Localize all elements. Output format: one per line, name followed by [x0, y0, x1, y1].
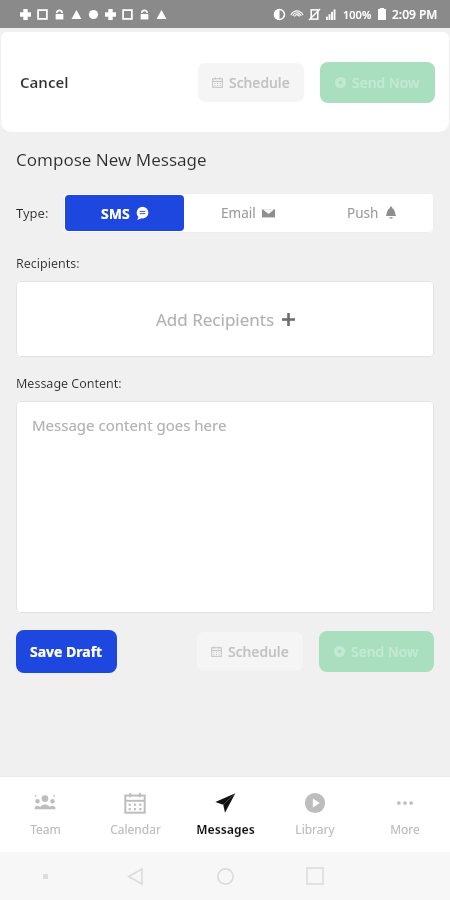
staticText: Save Draft	[30, 642, 103, 661]
button[interactable]: More	[360, 776, 450, 852]
button[interactable]: Save Draft	[16, 630, 117, 673]
staticText: 100%	[343, 7, 372, 22]
staticText: Type:	[16, 204, 49, 222]
staticText: Message content goes here	[32, 415, 227, 435]
staticText: Team	[30, 821, 61, 837]
staticText: SMS	[101, 204, 130, 223]
button[interactable]: Push	[310, 193, 434, 233]
staticText: 2:09 PM	[392, 6, 438, 22]
button[interactable]: SMS	[65, 195, 184, 231]
button[interactable]: Library	[270, 776, 360, 852]
staticText: Messages	[196, 821, 255, 837]
staticText: Email	[221, 204, 256, 222]
button[interactable]: Send Now	[320, 62, 435, 103]
staticText: Schedule	[229, 73, 290, 92]
staticText: Push	[347, 204, 379, 222]
staticText: Compose New Message	[16, 148, 207, 171]
button[interactable]: Email	[186, 193, 310, 233]
staticText: Send Now	[352, 73, 420, 92]
button[interactable]: Cancel	[16, 68, 73, 96]
staticText: More	[390, 821, 420, 837]
button[interactable]: Home	[180, 852, 270, 900]
staticText: Message Content:	[16, 375, 122, 392]
button[interactable]: Send Now	[319, 631, 434, 672]
button[interactable]: Recent apps	[270, 852, 360, 900]
button[interactable]: Back	[90, 852, 180, 900]
button[interactable]: Schedule	[197, 632, 303, 671]
button[interactable]: Team	[0, 776, 90, 852]
button[interactable]: Message content goes here	[16, 401, 434, 613]
staticText: Calendar	[110, 821, 161, 837]
button[interactable]: Calendar	[90, 776, 180, 852]
button[interactable]: Add Recipients	[16, 281, 434, 357]
button[interactable]: Messages	[180, 776, 270, 852]
staticText: Send Now	[351, 642, 419, 661]
staticText: Schedule	[228, 642, 289, 661]
staticText: Add Recipients	[156, 308, 275, 331]
staticText: Library	[295, 821, 335, 837]
button[interactable]: Schedule	[198, 63, 304, 102]
staticText: Recipients:	[16, 255, 80, 272]
